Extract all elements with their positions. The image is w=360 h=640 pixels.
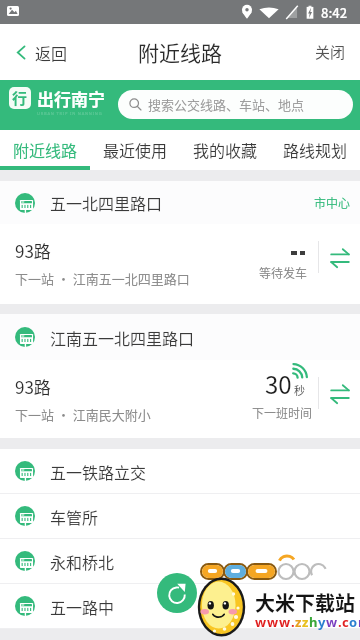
staticText: 附近线路 — [13, 138, 78, 161]
button[interactable]: 93路 — [0, 224, 360, 304]
staticText: . — [338, 613, 342, 631]
staticText: 93路 — [15, 374, 51, 399]
button[interactable]: Swap direction — [322, 360, 360, 438]
staticText: 最近使用 — [103, 138, 168, 161]
staticText: 附近线路 — [138, 37, 222, 67]
button[interactable]: 附近线路 — [0, 130, 90, 170]
staticText: c — [342, 613, 349, 631]
staticText: w — [255, 613, 267, 631]
button[interactable]: 五一北四里路口 — [0, 181, 360, 224]
button[interactable]: 搜索公交线路、车站、地点 — [118, 90, 353, 119]
staticText: 关闭 — [315, 41, 346, 63]
staticText: 我的收藏 — [193, 138, 258, 161]
staticText: 等待发车 — [259, 264, 308, 281]
button[interactable]: Refresh — [157, 573, 197, 613]
staticText: 市中心 — [314, 194, 351, 211]
staticText: . — [291, 613, 295, 631]
staticText: 车管所 — [50, 505, 99, 528]
staticText: 30 — [265, 366, 292, 401]
staticText: w — [279, 613, 291, 631]
staticText: 秒 — [294, 382, 305, 398]
staticText: 93路 — [15, 238, 51, 263]
staticText: URBAN TRIP IN NANNING — [37, 111, 103, 116]
button[interactable]: 车管所 — [0, 494, 360, 538]
staticText: z — [295, 613, 302, 631]
button[interactable]: 五一铁路立交 — [0, 449, 360, 493]
button[interactable]: Swap direction — [322, 224, 360, 304]
staticText: z — [302, 613, 309, 631]
button[interactable]: 返回 — [0, 33, 78, 72]
staticText: 下一站 · 江南民大附小 — [15, 405, 151, 424]
button[interactable]: 路线规划 — [270, 130, 360, 170]
staticText: 路线规划 — [283, 138, 348, 161]
staticText: w — [267, 613, 279, 631]
button[interactable]: 93路 — [0, 360, 360, 438]
staticText: 五一铁路立交 — [50, 460, 147, 483]
staticText: 大米下载站 — [255, 588, 355, 617]
button[interactable]: 关闭 — [301, 29, 360, 75]
staticText: 返回 — [35, 41, 68, 64]
staticText: 江南五一北四里路口 — [50, 326, 195, 349]
staticText: h — [309, 613, 318, 631]
staticText: 五一路中 — [50, 595, 115, 618]
staticText: 永和桥北 — [50, 550, 115, 573]
button[interactable]: 我的收藏 — [180, 130, 270, 170]
button[interactable]: 五一路中 — [0, 584, 360, 628]
staticText: m — [358, 613, 360, 631]
staticText: y — [318, 613, 326, 631]
staticText: 下一班时间 — [252, 404, 313, 421]
staticText: o — [349, 613, 358, 631]
staticText: w — [326, 613, 338, 631]
button[interactable]: 最近使用 — [90, 130, 180, 170]
staticText: 8:42 — [321, 3, 348, 22]
button[interactable]: 江南五一北四里路口 — [0, 314, 360, 360]
staticText: 搜索公交线路、车站、地点 — [148, 95, 305, 114]
staticText: 下一站 · 江南五一北四里路口 — [15, 269, 190, 288]
staticText: 出行南宁 — [37, 86, 105, 111]
button[interactable]: 永和桥北 — [0, 539, 360, 583]
staticText: 行 — [12, 87, 28, 109]
staticText: 五一北四里路口 — [50, 191, 163, 214]
